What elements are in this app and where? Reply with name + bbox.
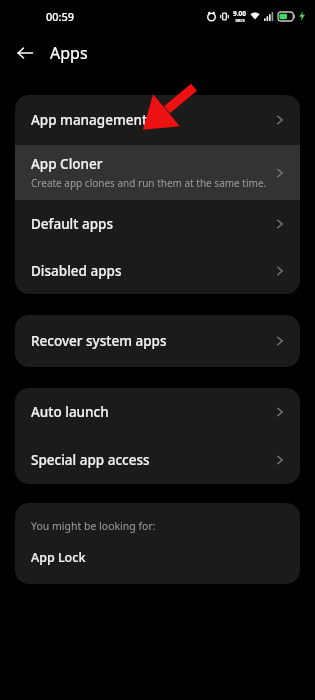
staticText: Special app access <box>31 451 150 469</box>
staticText: 9.00 <box>233 9 246 18</box>
staticText: Default apps <box>31 215 113 233</box>
staticText: Recover system apps <box>31 332 167 350</box>
button[interactable]: Auto launch <box>15 388 300 435</box>
staticText: Create app clones and run them at the sa… <box>31 176 267 190</box>
staticText: 00:59 <box>46 9 75 24</box>
staticText: App Cloner <box>31 155 103 173</box>
staticText: Apps <box>50 42 88 64</box>
staticText: You might be looking for: <box>31 519 156 533</box>
button[interactable]: App Lock <box>31 549 284 566</box>
staticText: KB/S <box>235 18 245 23</box>
button[interactable]: Default apps <box>15 200 300 247</box>
button[interactable]: Recover system apps <box>15 315 300 367</box>
staticText: Auto launch <box>31 403 109 421</box>
button[interactable]: App Cloner <box>15 145 300 200</box>
button[interactable]: App management <box>15 95 300 145</box>
button[interactable]: Special app access <box>15 435 300 484</box>
button[interactable]: Back <box>8 36 42 70</box>
staticText: App Lock <box>31 549 86 566</box>
staticText: App management <box>31 111 148 129</box>
button[interactable]: Disabled apps <box>15 247 300 294</box>
staticText: Disabled apps <box>31 262 122 280</box>
